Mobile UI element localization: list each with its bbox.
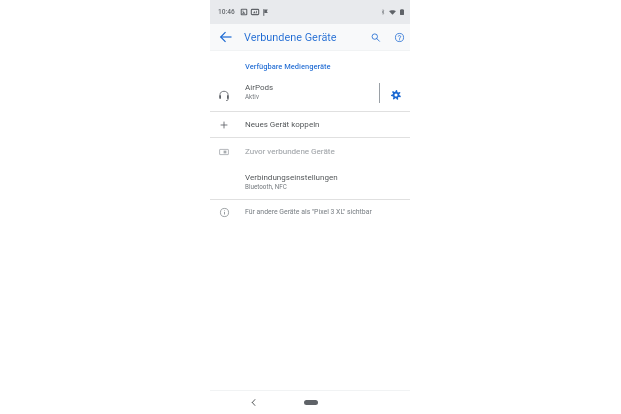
staticText: Bluetooth, NFC bbox=[245, 183, 287, 190]
button[interactable]: Verbindungseinstellungen bbox=[210, 168, 410, 196]
button[interactable]: Zuvor verbundene Geräte bbox=[210, 139, 410, 164]
button[interactable]: Neues Gerät koppeln bbox=[210, 112, 410, 137]
staticText: Verfügbare Mediengeräte bbox=[245, 62, 331, 71]
button[interactable]: AirPods bbox=[210, 79, 410, 110]
button[interactable]: Home bbox=[302, 394, 319, 410]
button[interactable]: Back bbox=[245, 394, 261, 410]
staticText: Zuvor verbundene Geräte bbox=[245, 147, 335, 156]
staticText: Verbindungseinstellungen bbox=[245, 173, 338, 182]
button[interactable]: Help bbox=[388, 24, 410, 50]
staticText: Aktiv bbox=[245, 93, 259, 100]
staticText: Für andere Geräte als "Pixel 3 XL" sicht… bbox=[245, 208, 372, 216]
staticText: 10:46 bbox=[218, 8, 235, 16]
staticText: AirPods bbox=[245, 83, 274, 92]
staticText: Verbundene Geräte bbox=[244, 31, 337, 44]
button[interactable]: Für andere Geräte als "Pixel 3 XL" sicht… bbox=[210, 200, 410, 224]
button[interactable]: Device settings bbox=[381, 79, 410, 110]
button[interactable]: Search bbox=[364, 24, 386, 50]
button[interactable]: Back bbox=[215, 24, 236, 50]
staticText: Neues Gerät koppeln bbox=[245, 120, 320, 129]
